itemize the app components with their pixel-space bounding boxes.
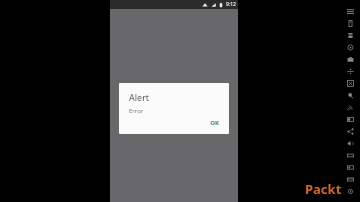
button[interactable]: Battery	[343, 115, 357, 124]
button[interactable]: Screenshot	[343, 79, 357, 88]
button[interactable]: Volume	[343, 31, 357, 40]
button[interactable]: Menu	[343, 7, 357, 16]
button[interactable]: Snapshots	[343, 175, 357, 184]
staticText: OK	[210, 119, 219, 127]
staticText: Packt	[305, 180, 342, 198]
button[interactable]: Settings	[343, 187, 357, 196]
button[interactable]: Cellular	[343, 103, 357, 112]
button[interactable]: Audio	[343, 139, 357, 148]
staticText: Error	[129, 107, 144, 115]
button[interactable]: Fingerprint	[343, 151, 357, 160]
button[interactable]: Camera	[343, 55, 357, 64]
button[interactable]: Zoom	[343, 67, 357, 76]
button[interactable]: OK	[206, 117, 223, 129]
button[interactable]: Share	[343, 127, 357, 136]
button[interactable]: Power	[343, 19, 357, 28]
button[interactable]: Location	[343, 91, 357, 100]
button[interactable]: Alert	[119, 83, 229, 134]
button[interactable]: Virtual sensors	[343, 163, 357, 172]
staticText: 9:12	[226, 1, 236, 8]
staticText: Alert	[129, 91, 150, 103]
button[interactable]: Rotate	[343, 43, 357, 52]
